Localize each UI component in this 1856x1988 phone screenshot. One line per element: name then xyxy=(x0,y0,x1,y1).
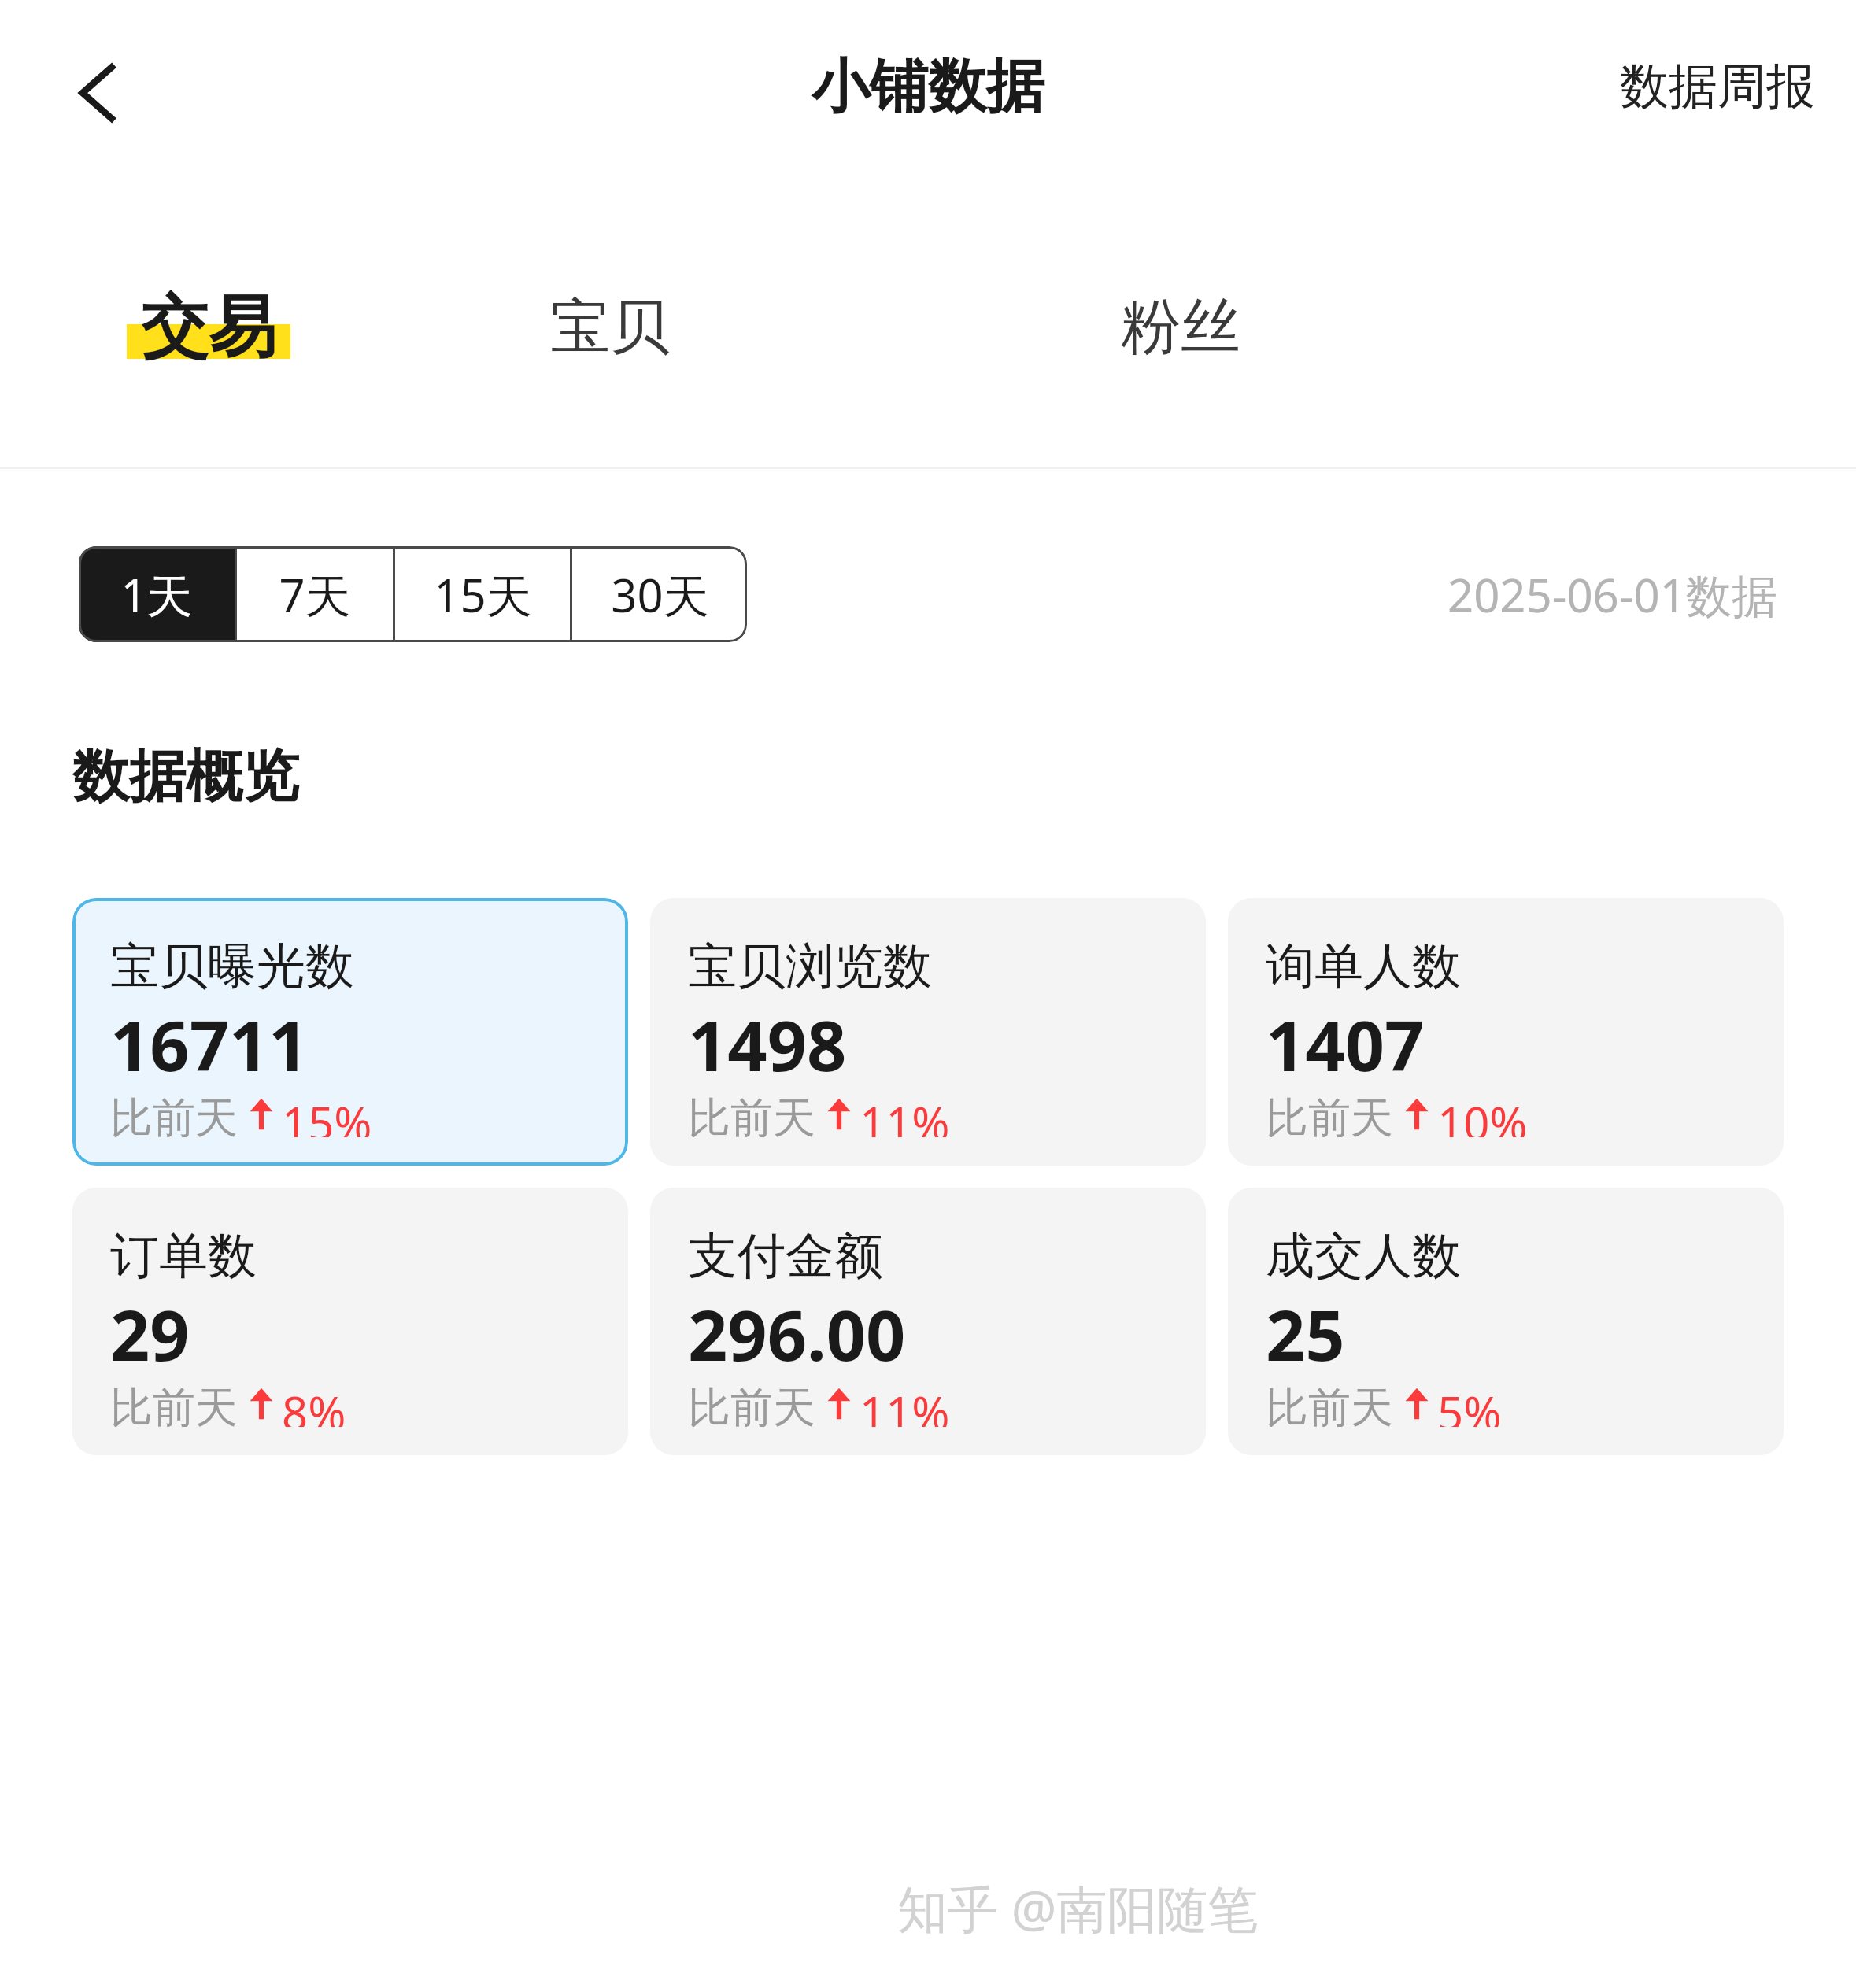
staticText: 10% xyxy=(1437,1092,1528,1137)
staticText: 数据周报 xyxy=(1620,56,1815,117)
staticText: 25 xyxy=(1266,1287,1345,1381)
staticText: 30天 xyxy=(611,564,709,626)
staticText: 8% xyxy=(282,1381,346,1427)
staticText: 粉丝 xyxy=(1121,290,1240,365)
staticText: 11% xyxy=(860,1092,950,1137)
staticText: 成交人数 xyxy=(1266,1225,1461,1287)
staticText: 7天 xyxy=(279,564,351,626)
staticText: 比前天 xyxy=(1266,1092,1393,1137)
staticText: 比前天 xyxy=(110,1381,238,1427)
staticText: 宝贝曝光数 xyxy=(110,936,354,997)
staticText: 15天 xyxy=(434,564,532,626)
staticText: 2025-06-01数据 xyxy=(1447,564,1777,626)
staticText: 1407 xyxy=(1266,997,1425,1092)
staticText: 29 xyxy=(110,1287,190,1381)
button[interactable]: 订单数 xyxy=(72,1188,628,1455)
staticText: 宝贝 xyxy=(550,290,670,365)
staticText: 宝贝浏览数 xyxy=(688,936,932,997)
staticText: 296.00 xyxy=(688,1287,906,1381)
staticText: 询单人数 xyxy=(1266,936,1461,997)
staticText: 小铺数据 xyxy=(812,50,1044,124)
staticText: 1天 xyxy=(120,564,193,626)
button[interactable]: 15天 xyxy=(395,546,570,642)
button[interactable]: 成交人数 xyxy=(1228,1188,1784,1455)
staticText: 15% xyxy=(282,1092,372,1137)
staticText: 支付金额 xyxy=(688,1225,883,1287)
staticText: 比前天 xyxy=(688,1092,815,1137)
staticText: 订单数 xyxy=(110,1225,257,1287)
staticText: 比前天 xyxy=(1266,1381,1393,1427)
staticText: 1498 xyxy=(688,997,847,1092)
button[interactable]: 交易 xyxy=(0,186,417,469)
button[interactable]: 7天 xyxy=(237,546,393,642)
button[interactable]: 宝贝曝光数 xyxy=(72,898,628,1166)
button[interactable]: 粉丝 xyxy=(803,186,1558,469)
button[interactable]: 30天 xyxy=(572,546,747,642)
staticText: 数据概览 xyxy=(72,741,299,813)
staticText: 11% xyxy=(860,1381,950,1427)
button[interactable]: 支付金额 xyxy=(650,1188,1206,1455)
button[interactable]: 宝贝浏览数 xyxy=(650,898,1206,1166)
button[interactable]: 询单人数 xyxy=(1228,898,1784,1166)
staticText: 比前天 xyxy=(110,1092,238,1137)
staticText: 交易 xyxy=(141,285,276,370)
staticText: 比前天 xyxy=(688,1381,815,1427)
staticText: 知乎 @南阳随笔 xyxy=(897,1874,1259,1942)
button[interactable]: 宝贝 xyxy=(417,186,803,469)
button[interactable]: 1天 xyxy=(79,546,235,642)
button[interactable]: Back xyxy=(41,34,159,152)
staticText: 16711 xyxy=(110,997,309,1092)
staticText: 5% xyxy=(1437,1381,1502,1427)
button[interactable]: 数据周报 xyxy=(1579,32,1856,141)
